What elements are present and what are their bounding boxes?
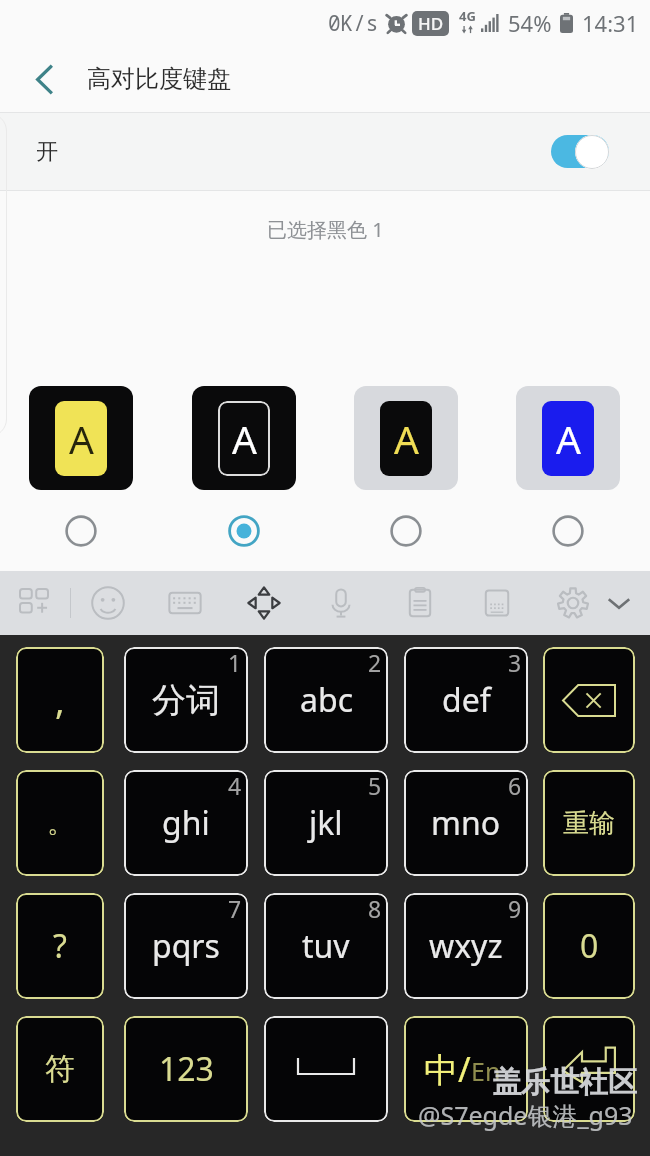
staticText: 123 — [159, 1047, 214, 1091]
button[interactable]: Emoji — [76, 571, 140, 635]
button[interactable]: 8 — [264, 893, 388, 999]
staticText: 0K/s — [328, 9, 379, 38]
staticText: 54% — [508, 8, 552, 38]
button[interactable]: 123 — [124, 1016, 248, 1122]
staticText: 5 — [368, 770, 382, 801]
staticText: 已选择黑色 1 — [267, 216, 384, 243]
staticText: 。 — [47, 807, 73, 840]
staticText: 7 — [228, 893, 242, 924]
button[interactable]: Backspace — [543, 647, 635, 753]
staticText: A — [69, 412, 94, 465]
staticText: @S7egde银港_g93 — [418, 1098, 633, 1132]
button[interactable]: Clipboard — [388, 571, 452, 635]
staticText: 3 — [508, 647, 522, 678]
button[interactable]: 6 — [404, 770, 528, 876]
staticText: 盖乐世社区 — [492, 1064, 637, 1101]
staticText: 6 — [508, 770, 522, 801]
staticText: wxyz — [429, 924, 503, 968]
staticText: jkl — [309, 801, 343, 845]
staticText: def — [442, 678, 491, 722]
staticText: abc — [300, 678, 353, 722]
staticText: tuv — [302, 924, 350, 968]
button[interactable]: Move cursor — [232, 571, 296, 635]
button[interactable]: Enter — [543, 1016, 635, 1122]
staticText: 分词 — [152, 679, 220, 722]
button[interactable]: 1 — [124, 647, 248, 753]
button[interactable]: Toolbar menu — [2, 571, 66, 635]
staticText: pqrs — [152, 924, 220, 968]
staticText: En — [471, 1054, 501, 1088]
button[interactable]: ? — [16, 893, 104, 999]
staticText: A — [556, 412, 581, 465]
button[interactable]: A — [192, 386, 296, 547]
staticText: 开 — [36, 138, 58, 166]
button[interactable]: Space — [264, 1016, 388, 1122]
staticText: mno — [431, 801, 501, 845]
staticText: 4G — [459, 7, 476, 25]
button[interactable]: Settings — [541, 571, 605, 635]
button[interactable]: Switch language — [404, 1016, 528, 1122]
button[interactable]: 2 — [264, 647, 388, 753]
button[interactable]: Voice input — [309, 571, 373, 635]
button[interactable]: Handwriting — [465, 571, 529, 635]
staticText: ? — [53, 924, 67, 968]
staticText: 14:31 — [582, 8, 639, 38]
staticText: , — [55, 676, 65, 725]
staticText: 9 — [508, 893, 522, 924]
staticText: 8 — [368, 893, 382, 924]
staticText: 重输 — [563, 807, 615, 840]
button[interactable]: , — [16, 647, 104, 753]
button[interactable]: 3 — [404, 647, 528, 753]
button[interactable]: 9 — [404, 893, 528, 999]
staticText: 中/ — [424, 1046, 471, 1092]
button[interactable]: 0 — [543, 893, 635, 999]
button[interactable]: 重输 — [543, 770, 635, 876]
staticText: A — [394, 412, 419, 465]
button[interactable]: 符 — [16, 1016, 104, 1122]
staticText: 4 — [228, 770, 242, 801]
staticText: 2 — [368, 647, 382, 678]
button[interactable]: 开 — [0, 113, 650, 190]
button[interactable]: 7 — [124, 893, 248, 999]
staticText: 1 — [228, 647, 242, 678]
button[interactable]: A — [29, 386, 133, 547]
button[interactable]: Keyboard layout — [153, 571, 217, 635]
button[interactable]: 5 — [264, 770, 388, 876]
staticText: 高对比度键盘 — [87, 64, 231, 94]
staticText: HD — [418, 12, 444, 35]
staticText: 0 — [580, 924, 599, 968]
button[interactable]: Hide keyboard — [587, 571, 650, 635]
button[interactable]: A — [516, 386, 620, 547]
staticText: 符 — [45, 1050, 75, 1088]
staticText: A — [232, 412, 257, 465]
button[interactable]: 4 — [124, 770, 248, 876]
button[interactable]: Back — [16, 51, 72, 107]
button[interactable]: A — [354, 386, 458, 547]
button[interactable]: 。 — [16, 770, 104, 876]
staticText: ghi — [162, 801, 210, 845]
